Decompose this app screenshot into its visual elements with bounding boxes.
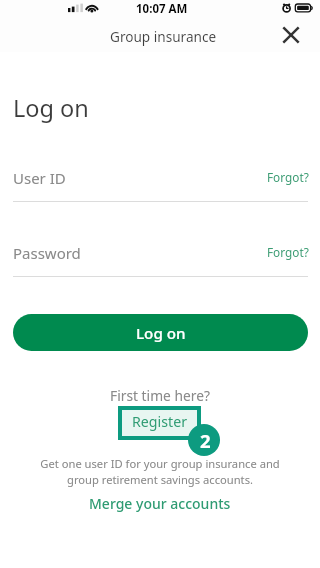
staticText: Get one user ID for your group insurance… <box>40 456 280 487</box>
staticText: Log on <box>13 92 89 124</box>
staticText: Register <box>132 412 187 431</box>
staticText: Password <box>13 243 81 263</box>
staticText: Log on <box>136 323 186 344</box>
staticText: 10:07 AM <box>136 1 188 17</box>
staticText: First time here? <box>110 386 210 405</box>
staticText: Forgot? <box>267 244 309 260</box>
button[interactable]: Merge your accounts <box>73 486 247 521</box>
button[interactable]: Forgot? <box>267 162 309 192</box>
staticText: User ID <box>13 168 66 188</box>
button[interactable]: Log on <box>13 314 308 351</box>
staticText: Merge your accounts <box>89 494 231 513</box>
staticText: Forgot? <box>267 169 309 185</box>
staticText: 2 <box>200 428 211 453</box>
button[interactable]: Register <box>122 410 197 436</box>
staticText: Group insurance <box>110 27 217 46</box>
button[interactable]: Forgot? <box>267 237 309 267</box>
button[interactable]: Close <box>277 21 305 49</box>
